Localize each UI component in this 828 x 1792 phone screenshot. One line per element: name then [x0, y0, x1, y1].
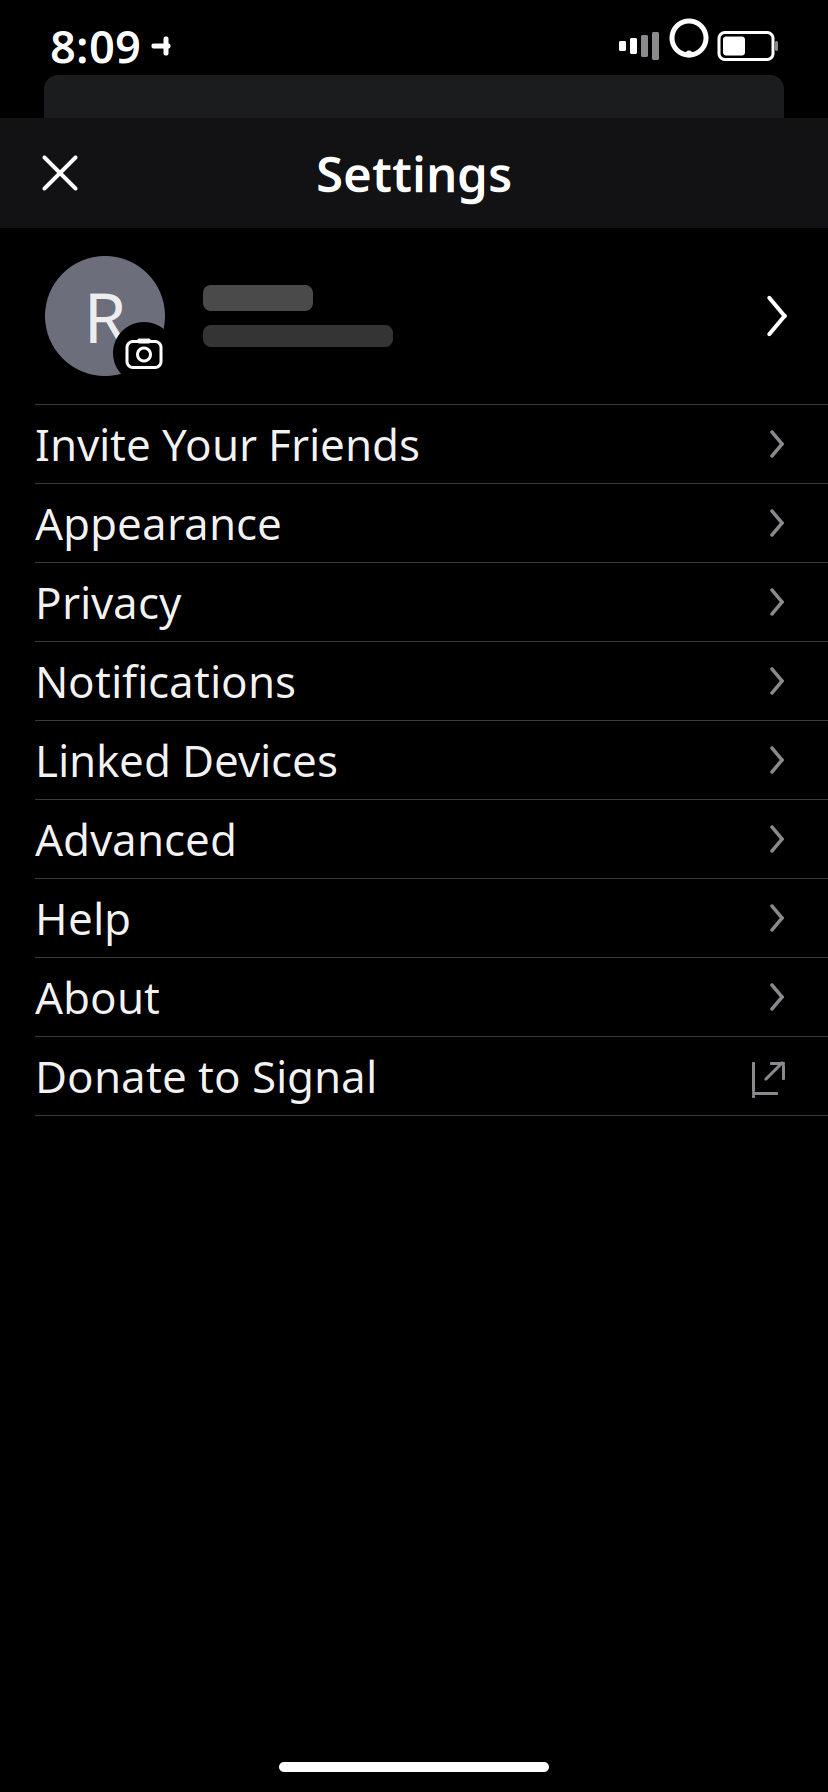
staticText: Invite Your Friends [35, 415, 420, 473]
staticText: Donate to Signal [35, 1047, 377, 1105]
button[interactable]: Linked Devices [0, 721, 828, 799]
staticText: 8:09 [50, 16, 141, 76]
staticText: R [83, 270, 126, 362]
button[interactable]: Close [22, 135, 98, 211]
button[interactable]: R [0, 228, 828, 404]
staticText: Linked Devices [35, 731, 338, 789]
staticText: Notifications [35, 652, 296, 710]
button[interactable]: About [0, 958, 828, 1036]
staticText: Help [35, 889, 131, 947]
staticText: Appearance [35, 494, 282, 552]
button[interactable]: Donate to Signal [0, 1037, 828, 1115]
staticText: Advanced [35, 810, 237, 868]
button[interactable]: Notifications [0, 642, 828, 720]
button[interactable]: Advanced [0, 800, 828, 878]
button[interactable]: Invite Your Friends [0, 405, 828, 483]
staticText: Settings [316, 140, 512, 206]
button[interactable]: Appearance [0, 484, 828, 562]
button[interactable]: Privacy [0, 563, 828, 641]
staticText: About [35, 968, 160, 1026]
staticText: Privacy [35, 573, 181, 631]
button[interactable]: Help [0, 879, 828, 957]
